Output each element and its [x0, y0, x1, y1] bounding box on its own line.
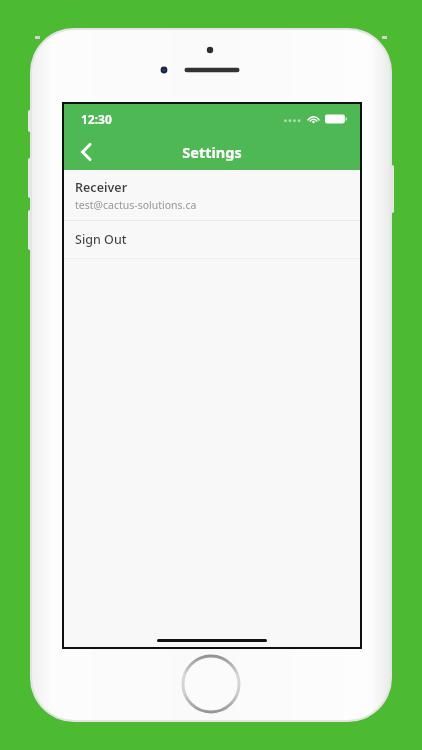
- button[interactable]: Back: [64, 133, 108, 170]
- staticText: Sign Out: [75, 231, 127, 248]
- staticText: Settings: [182, 142, 242, 162]
- staticText: 12:30: [81, 111, 112, 127]
- staticText: test@cactus-solutions.ca: [75, 198, 197, 212]
- button[interactable]: Sign Out: [64, 221, 360, 258]
- staticText: Receiver: [75, 179, 128, 196]
- button[interactable]: Receiver: [64, 170, 360, 220]
